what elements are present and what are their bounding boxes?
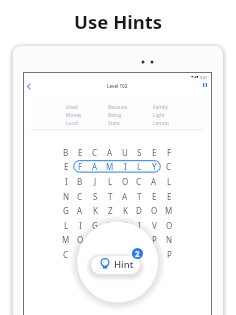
staticText: Lemon bbox=[153, 120, 169, 127]
staticText: I bbox=[138, 220, 141, 231]
staticText: A bbox=[122, 191, 128, 202]
staticText: M bbox=[106, 161, 114, 172]
staticText: E bbox=[78, 147, 83, 158]
staticText: G bbox=[92, 220, 98, 231]
staticText: J bbox=[94, 176, 97, 187]
staticText: S bbox=[93, 191, 98, 202]
staticText: M bbox=[135, 249, 143, 260]
staticText: N bbox=[63, 191, 70, 202]
staticText: P bbox=[167, 249, 172, 260]
staticText: 9:41 bbox=[200, 75, 208, 80]
staticText: A bbox=[107, 147, 113, 158]
staticText: L bbox=[64, 220, 69, 231]
staticText: O bbox=[166, 220, 173, 231]
staticText: A bbox=[151, 176, 157, 187]
staticText: A bbox=[77, 205, 83, 216]
staticText: 2 bbox=[135, 248, 140, 259]
staticText: A bbox=[92, 161, 98, 172]
staticText: E bbox=[152, 147, 157, 158]
staticText: E bbox=[167, 191, 172, 202]
staticText: C bbox=[92, 147, 98, 158]
staticText: I bbox=[65, 176, 68, 187]
staticText: L bbox=[108, 176, 113, 187]
button[interactable]: Pause bbox=[197, 77, 211, 91]
staticText: C bbox=[77, 191, 83, 202]
staticText: F bbox=[167, 147, 172, 158]
staticText: D bbox=[136, 205, 142, 216]
staticText: L bbox=[167, 176, 172, 187]
staticText: E bbox=[64, 161, 69, 172]
staticText: M bbox=[62, 234, 70, 245]
staticText: Light bbox=[153, 112, 165, 119]
staticText: B bbox=[77, 176, 83, 187]
staticText: P bbox=[152, 234, 157, 245]
staticText: E bbox=[152, 191, 157, 202]
staticText: M bbox=[165, 205, 173, 216]
staticText: B bbox=[63, 147, 69, 158]
button[interactable]: Back bbox=[22, 79, 35, 94]
staticText: G bbox=[63, 205, 69, 216]
staticText: O bbox=[151, 205, 158, 216]
staticText: Use Hints bbox=[74, 9, 163, 34]
staticText: Z bbox=[108, 205, 113, 216]
staticText: I bbox=[79, 220, 82, 231]
staticText: L bbox=[123, 249, 128, 260]
staticText: I bbox=[124, 161, 127, 172]
button[interactable]: 2 hints available bbox=[132, 248, 143, 259]
staticText: O bbox=[122, 176, 129, 187]
staticText: T bbox=[123, 220, 128, 231]
staticText: Local bbox=[66, 120, 78, 127]
other: Status icons bbox=[191, 76, 211, 82]
staticText: K bbox=[93, 205, 98, 216]
staticText: C bbox=[166, 161, 172, 172]
staticText: S bbox=[137, 147, 142, 158]
button[interactable]: Hint bbox=[91, 256, 140, 274]
staticText: K bbox=[123, 205, 128, 216]
staticText: T bbox=[108, 191, 113, 202]
staticText: Family bbox=[153, 104, 168, 111]
staticText: R bbox=[78, 249, 83, 260]
staticText: Level 102 bbox=[107, 83, 128, 89]
staticText: N bbox=[107, 249, 114, 260]
staticText: X bbox=[152, 249, 157, 260]
staticText: Money bbox=[66, 112, 82, 119]
staticText: State bbox=[108, 120, 120, 127]
staticText: C bbox=[136, 176, 142, 187]
staticText: Hint bbox=[114, 258, 134, 271]
staticText: H bbox=[107, 220, 113, 231]
staticText: U bbox=[122, 147, 128, 158]
staticText: S bbox=[93, 249, 98, 260]
staticText: Being bbox=[108, 112, 122, 119]
staticText: V bbox=[152, 220, 157, 231]
staticText: Because bbox=[108, 104, 128, 111]
staticText: Y bbox=[152, 161, 157, 172]
staticText: Used bbox=[66, 104, 78, 111]
staticText: L bbox=[137, 161, 142, 172]
staticText: N bbox=[166, 234, 173, 245]
staticText: T bbox=[137, 191, 142, 202]
staticText: O bbox=[77, 234, 84, 245]
staticText: C bbox=[63, 249, 69, 260]
staticText: F bbox=[78, 161, 83, 172]
